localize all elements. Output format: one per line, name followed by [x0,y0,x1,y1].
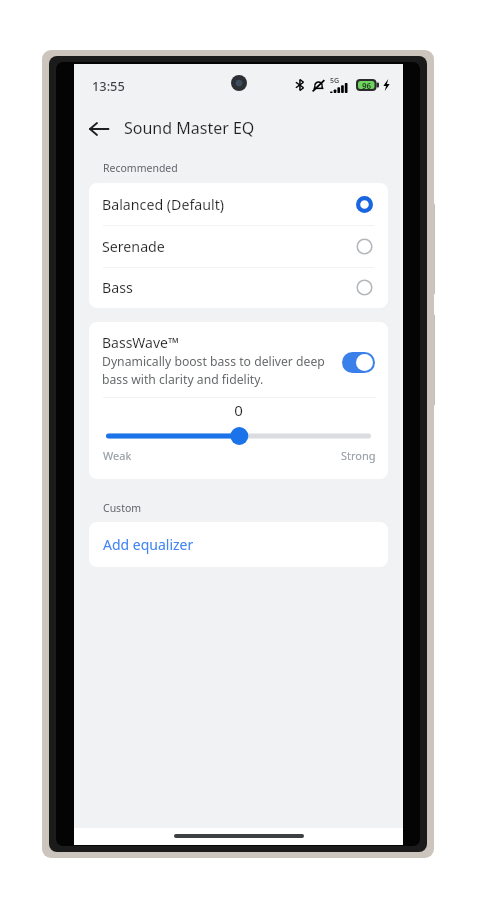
staticText: 5G [330,76,340,86]
staticText: 13:55 [92,77,125,94]
button[interactable]: Bass [89,267,388,308]
staticText: Serenade [102,237,165,256]
button[interactable]: Add equalizer [89,522,388,567]
button[interactable]: Balanced (Default) [89,183,388,225]
staticText: 96 [362,80,372,91]
button[interactable]: BassWave toggle [342,352,375,373]
staticText: Weak [103,448,132,463]
staticText: Custom [103,501,142,515]
staticText: Add equalizer [103,535,194,554]
staticText: 0 [89,400,388,420]
staticText: Balanced (Default) [102,195,225,214]
staticText: Sound Master EQ [124,117,255,139]
button[interactable]: Back [83,113,115,145]
staticText: Recommended [103,161,178,175]
staticText: Dynamically boost bass to deliver deep b… [102,353,325,388]
staticText: BassWave™ [102,333,179,352]
button[interactable]: Serenade [89,225,388,267]
staticText: Strong [341,448,376,463]
staticText: Bass [102,278,133,297]
